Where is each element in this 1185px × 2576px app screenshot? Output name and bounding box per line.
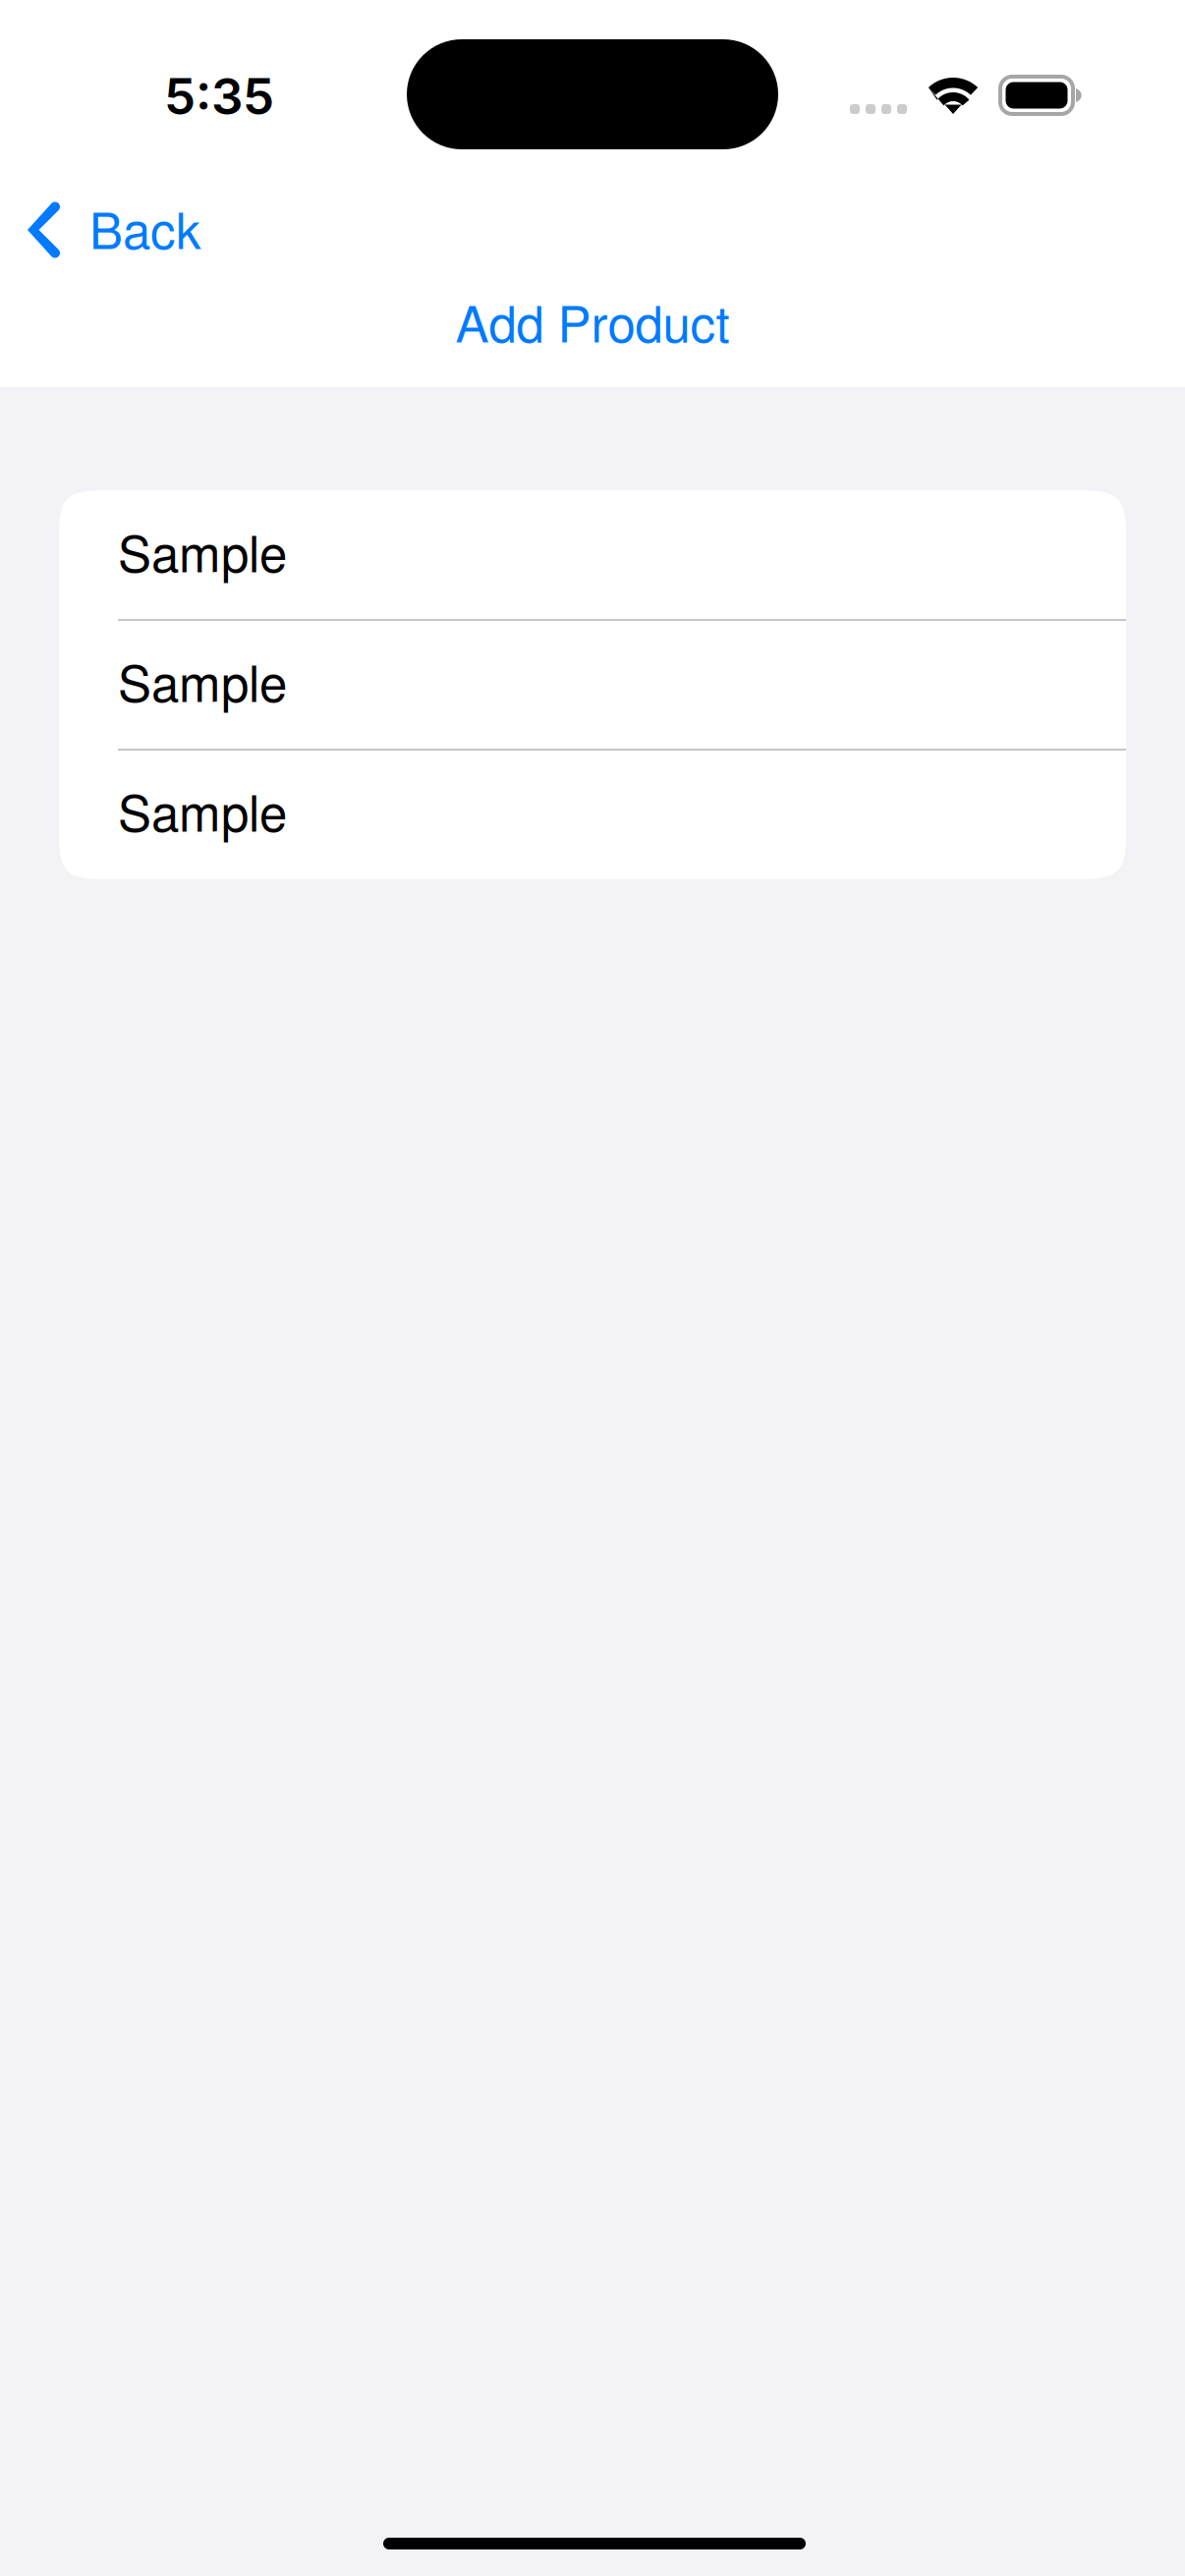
button[interactable]: Sample xyxy=(59,621,1126,749)
staticText: 5:35 xyxy=(164,66,274,127)
staticText: Sample xyxy=(118,774,287,846)
button[interactable]: Sample xyxy=(59,751,1126,878)
staticText: Add Product xyxy=(455,285,730,357)
staticText: Sample xyxy=(118,515,287,587)
staticText: Back xyxy=(89,192,201,263)
staticText: Sample xyxy=(118,644,287,716)
button[interactable]: Sample xyxy=(59,491,1126,619)
button[interactable]: Back xyxy=(0,177,423,270)
